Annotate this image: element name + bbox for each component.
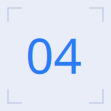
staticText: 04 xyxy=(25,22,81,87)
button[interactable]: 04 xyxy=(0,0,111,111)
